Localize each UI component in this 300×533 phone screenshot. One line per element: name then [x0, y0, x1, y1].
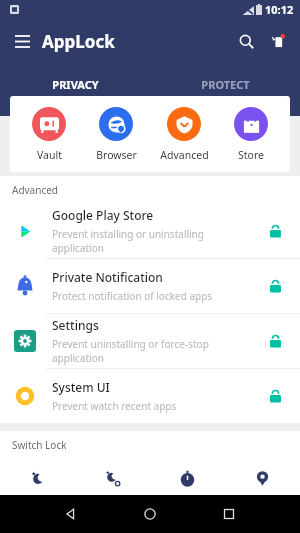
staticText: Advanced: [12, 183, 58, 197]
button[interactable]: Timer lock: [150, 462, 225, 495]
staticText: Protect notification of locked apps: [52, 289, 213, 303]
button[interactable]: Google Play Store: [0, 204, 300, 259]
button[interactable]: Notifications: [262, 25, 294, 57]
button[interactable]: Store: [218, 107, 284, 162]
staticText: Prevent watch recent apps: [52, 399, 177, 413]
staticText: Prevent uninstalling or force-stop appli…: [52, 337, 254, 365]
staticText: Vault: [37, 148, 62, 162]
button[interactable]: Settings: [0, 314, 300, 369]
button[interactable]: Search: [230, 25, 262, 57]
other: Recents: [221, 506, 237, 522]
staticText: PRIVACY: [52, 77, 99, 92]
staticText: Store: [238, 148, 264, 162]
button[interactable]: Browser: [83, 107, 149, 162]
staticText: Google Play Store: [52, 207, 154, 223]
button[interactable]: Location lock: [225, 462, 300, 495]
staticText: Private Notification: [52, 269, 163, 285]
button[interactable]: System UI: [0, 369, 300, 423]
staticText: Switch Lock: [12, 438, 67, 452]
button[interactable]: Locked, toggle lock for Settings: [262, 328, 288, 354]
staticText: PROTECT: [201, 77, 250, 92]
staticText: Advanced: [160, 148, 209, 162]
button[interactable]: Locked, toggle lock for Private Notifica…: [262, 273, 288, 299]
button[interactable]: PROTECT: [150, 63, 300, 116]
button[interactable]: Night mode lock: [0, 462, 75, 495]
button[interactable]: Open navigation menu: [8, 27, 36, 55]
staticText: Browser: [96, 148, 137, 162]
button[interactable]: Private Notification: [0, 259, 300, 314]
staticText: 10:12: [265, 2, 294, 17]
button[interactable]: Advanced: [151, 107, 217, 162]
other: Back: [63, 506, 79, 522]
staticText: Prevent installing or uninstalling appli…: [52, 227, 254, 255]
button[interactable]: Locked, toggle lock for Google Play Stor…: [262, 218, 288, 244]
staticText: AppLock: [42, 30, 115, 53]
staticText: Settings: [52, 317, 99, 333]
button[interactable]: Sleep lock: [75, 462, 150, 495]
button[interactable]: Vault: [16, 107, 82, 162]
other: Home: [142, 506, 158, 522]
staticText: System UI: [52, 379, 110, 395]
button[interactable]: Locked, toggle lock for System UI: [262, 383, 288, 409]
button[interactable]: PRIVACY: [0, 63, 150, 116]
